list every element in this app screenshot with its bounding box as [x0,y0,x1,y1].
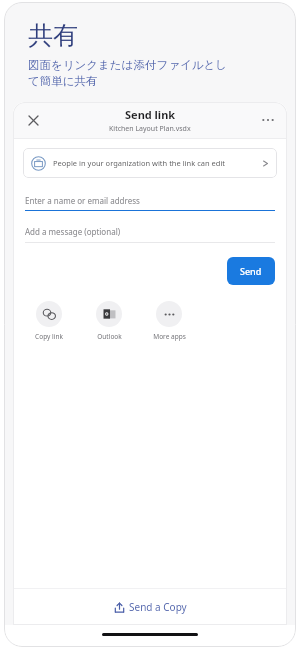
staticText: Add a message (optional) [25,226,121,237]
staticText: Enter a name or email address [25,195,140,206]
button[interactable]: Send [227,257,275,285]
staticText: More apps [153,332,186,341]
button[interactable]: Outlook [87,301,131,341]
button[interactable]: People in your organization with the lin… [23,148,277,178]
button[interactable]: Enter a name or email address [25,192,275,208]
button[interactable]: More options [253,105,283,135]
button[interactable]: Add a message (optional) [25,223,275,239]
button[interactable]: Send a Copy [13,589,287,625]
staticText: Send [240,265,262,277]
staticText: Kitchen Layout Plan.vsdx [109,124,191,134]
button[interactable]: More apps [147,301,191,341]
staticText: 図面をリンクまたは添付ファイルとし て簡単に共有 [28,58,228,88]
button[interactable]: Copy link [27,301,71,341]
staticText: Send a Copy [129,600,187,614]
staticText: Copy link [35,332,63,341]
staticText: 共有 [28,20,78,51]
button[interactable]: Close [17,104,49,136]
staticText: Send link [125,107,176,122]
staticText: Outlook [97,332,122,341]
staticText: People in your organization with the lin… [53,158,262,168]
